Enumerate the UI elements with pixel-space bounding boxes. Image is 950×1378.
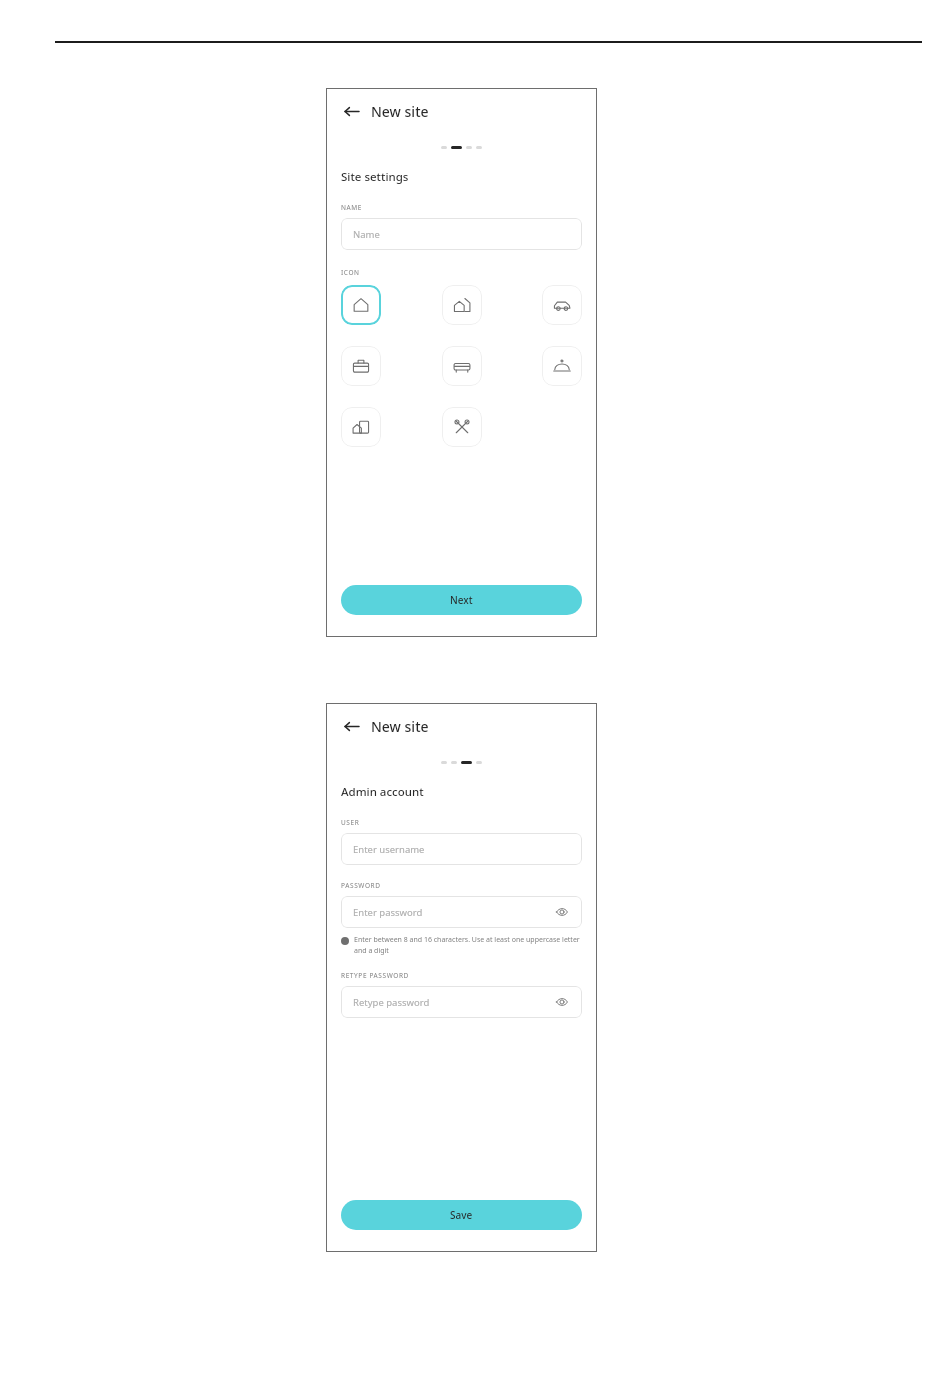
button[interactable]: Next bbox=[341, 585, 582, 615]
staticText: Enter password bbox=[353, 906, 554, 919]
staticText: NAME bbox=[341, 203, 363, 212]
staticText: Next bbox=[450, 593, 473, 607]
button[interactable]: Building bbox=[341, 407, 381, 447]
button[interactable]: Name bbox=[341, 218, 582, 250]
button[interactable]: Retype password bbox=[341, 986, 582, 1018]
staticText: Admin account bbox=[341, 784, 424, 800]
button[interactable]: Bell bbox=[542, 346, 582, 386]
button[interactable]: Enter username bbox=[341, 833, 582, 865]
staticText: RETYPE PASSWORD bbox=[341, 971, 409, 980]
staticText: USER bbox=[341, 818, 360, 827]
button[interactable]: Briefcase bbox=[341, 346, 381, 386]
button[interactable]: Save bbox=[341, 1200, 582, 1230]
staticText: Enter username bbox=[353, 843, 570, 856]
button[interactable]: Show password bbox=[554, 994, 570, 1010]
staticText: Retype password bbox=[353, 996, 554, 1009]
staticText: Name bbox=[353, 228, 570, 241]
button[interactable]: Sofa bbox=[442, 346, 482, 386]
staticText: New site bbox=[371, 717, 429, 736]
staticText: Save bbox=[450, 1208, 473, 1222]
button[interactable]: Back bbox=[340, 100, 362, 122]
staticText: ICON bbox=[341, 268, 360, 277]
button[interactable]: Back bbox=[340, 715, 362, 737]
button[interactable]: Enter password bbox=[341, 896, 582, 928]
staticText: Site settings bbox=[341, 169, 409, 185]
button[interactable]: Houses bbox=[442, 285, 482, 325]
staticText: PASSWORD bbox=[341, 881, 381, 890]
staticText: New site bbox=[371, 102, 429, 121]
button[interactable]: Show password bbox=[554, 904, 570, 920]
button[interactable]: Car bbox=[542, 285, 582, 325]
staticText: Enter between 8 and 16 characters. Use a… bbox=[354, 935, 582, 955]
button[interactable]: House bbox=[341, 285, 381, 325]
button[interactable]: Tools bbox=[442, 407, 482, 447]
